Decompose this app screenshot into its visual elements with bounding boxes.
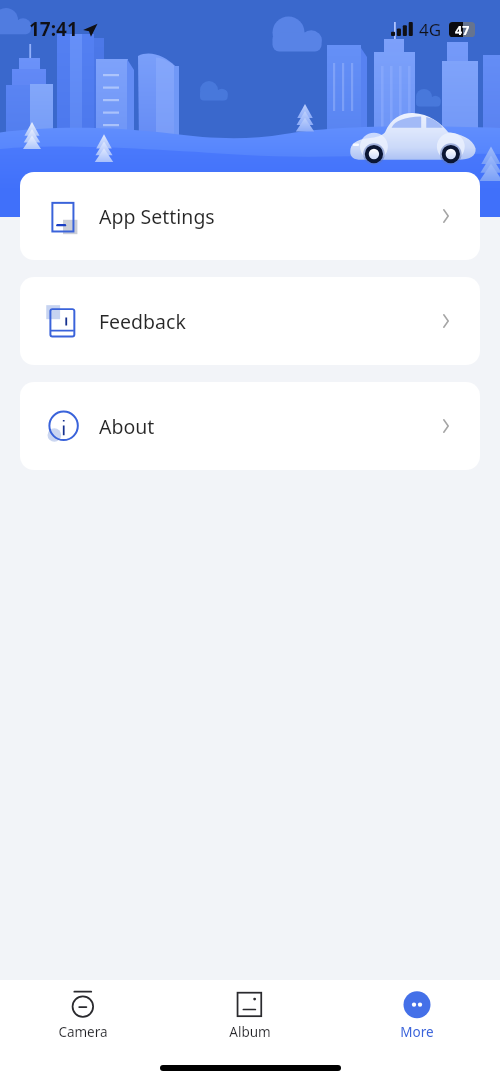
staticText: 47 <box>455 22 470 37</box>
button[interactable]: About <box>20 382 480 470</box>
button[interactable]: App Settings <box>20 172 480 260</box>
staticText: Feedback <box>99 308 186 335</box>
button[interactable]: Camera <box>0 990 166 1041</box>
staticText: 4G <box>419 18 442 41</box>
staticText: About <box>99 413 155 440</box>
staticText: More <box>400 1023 434 1041</box>
staticText: Album <box>229 1023 271 1041</box>
staticText: 17:41 <box>29 16 78 42</box>
staticText: App Settings <box>99 203 215 230</box>
button[interactable]: Album <box>166 990 333 1041</box>
staticText: Camera <box>58 1023 108 1041</box>
button[interactable]: Feedback <box>20 277 480 365</box>
button[interactable]: More <box>333 990 500 1041</box>
